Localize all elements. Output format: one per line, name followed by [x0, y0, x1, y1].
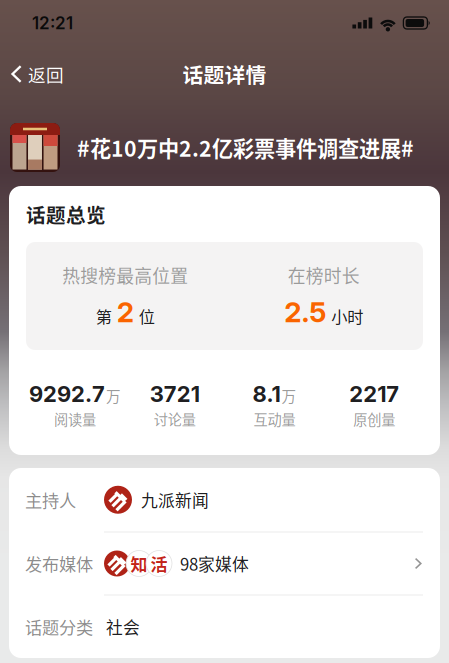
staticText: 第: [96, 306, 112, 325]
staticText: 话题详情: [182, 62, 266, 86]
staticText: #花10万中2.2亿彩票事件调查进展#: [77, 135, 414, 160]
staticText: 知: [130, 554, 147, 573]
staticText: 讨论量: [154, 411, 196, 427]
staticText: 98家媒体: [180, 554, 249, 573]
staticText: 在榜时长: [288, 265, 360, 285]
staticText: 2217: [349, 383, 399, 405]
staticText: 小时: [331, 306, 363, 325]
button[interactable]: 返回: [0, 46, 74, 102]
staticText: 社会: [106, 617, 140, 636]
staticText: 位: [139, 306, 155, 325]
staticText: 8.1: [252, 383, 280, 405]
staticText: 9292.7: [29, 383, 105, 405]
staticText: 阅读量: [54, 411, 96, 427]
staticText: 主持人: [25, 490, 76, 510]
staticText: 热搜榜最高位置: [62, 265, 188, 285]
staticText: 互动量: [253, 411, 295, 427]
staticText: 返回: [28, 64, 64, 84]
staticText: 2.5: [284, 298, 326, 326]
staticText: 原创量: [353, 411, 395, 427]
staticText: 万: [281, 387, 296, 404]
button[interactable]: 主持人: [9, 468, 440, 531]
staticText: 3721: [150, 383, 200, 405]
staticText: 活: [150, 554, 167, 573]
staticText: 万: [106, 387, 121, 404]
staticText: 发布媒体: [25, 553, 93, 573]
staticText: 话题总览: [26, 203, 106, 225]
staticText: 九派新闻: [141, 490, 209, 509]
staticText: 12:21: [32, 14, 73, 32]
staticText: 2: [117, 298, 134, 326]
button[interactable]: 发布媒体: [9, 532, 440, 594]
staticText: 话题分类: [25, 617, 93, 637]
